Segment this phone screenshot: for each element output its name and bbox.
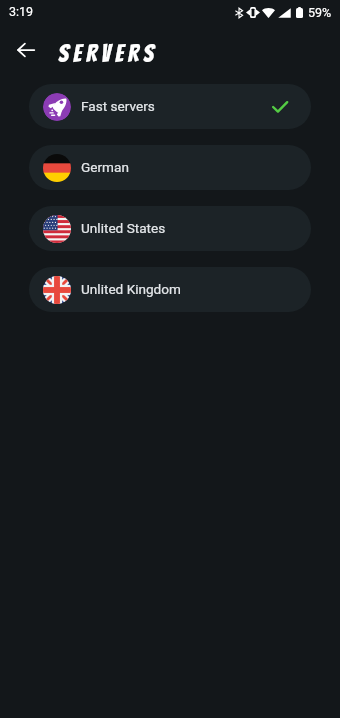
button[interactable]: Fast servers (29, 84, 311, 129)
button[interactable]: German (29, 145, 311, 190)
staticText: SERVERS (58, 41, 158, 67)
staticText: Unlited States (81, 220, 166, 236)
staticText: 59% (308, 5, 332, 20)
staticText: German (81, 159, 129, 175)
button[interactable]: Unlited States (29, 206, 311, 251)
button[interactable]: Back (8, 32, 43, 67)
staticText: Fast servers (81, 98, 155, 114)
staticText: Unlited Kingdom (81, 281, 181, 297)
button[interactable]: Unlited Kingdom (29, 267, 311, 312)
staticText: 3:19 (9, 4, 34, 19)
